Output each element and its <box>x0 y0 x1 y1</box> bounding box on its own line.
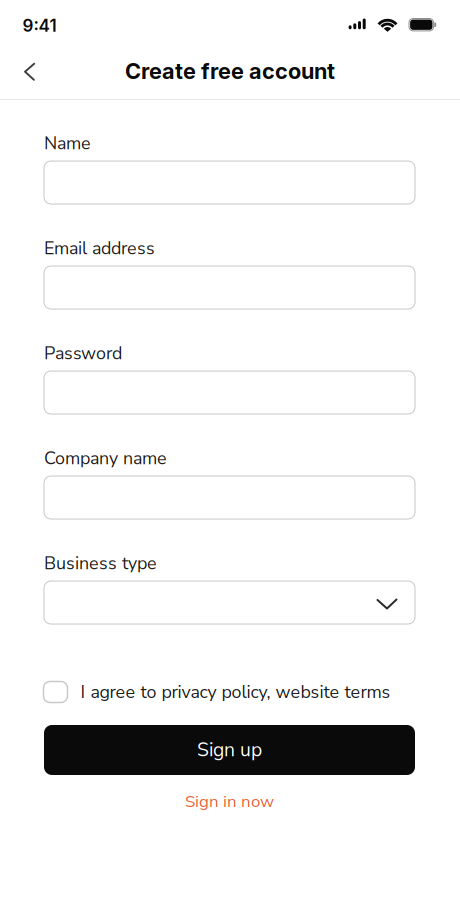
textField[interactable]: Email address <box>58 266 415 296</box>
staticText: Password <box>44 341 122 365</box>
textField[interactable]: Password <box>58 371 415 401</box>
staticText: Email address <box>44 236 155 260</box>
button[interactable]: Sign in now <box>185 790 274 813</box>
staticText: Create free account <box>125 58 335 84</box>
staticText: Sign in now <box>185 790 274 813</box>
staticText: Company name <box>44 446 167 470</box>
button[interactable]: Sign up <box>44 725 415 775</box>
staticText: Business type <box>44 551 157 575</box>
textField[interactable]: Name <box>58 161 415 191</box>
button[interactable]: Back <box>17 60 41 84</box>
staticText: 9:41 <box>22 15 56 36</box>
staticText: I agree to privacy policy, website terms <box>80 680 390 704</box>
textField[interactable]: Company name <box>58 476 415 506</box>
button[interactable]: I agree to privacy policy, website terms <box>43 679 415 705</box>
staticText: Sign up <box>197 737 262 763</box>
button[interactable]: Business type <box>44 581 415 624</box>
staticText: Name <box>44 131 91 155</box>
